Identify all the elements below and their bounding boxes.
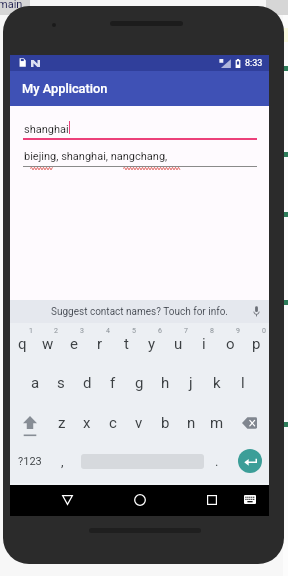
button[interactable]: Enter: [230, 441, 269, 481]
button[interactable]: d: [74, 363, 100, 403]
staticText: y: [148, 335, 156, 353]
staticText: 1: [29, 327, 33, 335]
button[interactable]: Backspace: [230, 403, 269, 443]
staticText: m: [210, 414, 224, 432]
staticText: main: [0, 0, 23, 11]
button[interactable]: j: [178, 363, 204, 403]
button[interactable]: 0: [243, 323, 269, 363]
staticText: k: [213, 374, 221, 392]
staticText: 5: [132, 327, 136, 335]
button[interactable]: ,: [49, 441, 75, 481]
staticText: ?123: [18, 455, 42, 468]
staticText: Suggest contact names? Touch for info.: [10, 306, 269, 318]
button[interactable]: shanghai: [24, 123, 69, 136]
staticText: 8: [210, 327, 214, 335]
button[interactable]: s: [48, 363, 74, 403]
staticText: b: [161, 414, 170, 432]
staticText: f: [110, 374, 116, 392]
button[interactable]: 8: [191, 323, 217, 363]
button[interactable]: 5: [113, 323, 139, 363]
staticText: z: [58, 414, 66, 432]
staticText: p: [252, 335, 261, 353]
button[interactable]: 7: [165, 323, 191, 363]
button[interactable]: k: [204, 363, 230, 403]
button[interactable]: Back: [47, 485, 87, 514]
staticText: a: [31, 374, 40, 392]
button[interactable]: m: [204, 403, 230, 443]
button[interactable]: Recents: [192, 485, 232, 514]
button[interactable]: f: [100, 363, 126, 403]
staticText: 4: [106, 327, 110, 335]
staticText: e: [70, 335, 78, 353]
button[interactable]: Space: [75, 441, 204, 481]
staticText: 6: [158, 327, 162, 335]
button[interactable]: n: [178, 403, 204, 443]
button[interactable]: Home: [120, 485, 160, 514]
button[interactable]: 9: [217, 323, 243, 363]
button[interactable]: Voice input: [243, 300, 269, 323]
button[interactable]: 6: [139, 323, 165, 363]
button[interactable]: b: [152, 403, 178, 443]
staticText: ,: [61, 454, 64, 469]
staticText: d: [83, 374, 92, 392]
button[interactable]: 1: [10, 323, 35, 363]
staticText: x: [83, 414, 91, 432]
staticText: h: [161, 374, 170, 392]
button[interactable]: ?123: [10, 441, 49, 481]
button[interactable]: x: [74, 403, 100, 443]
staticText: o: [226, 335, 235, 353]
button[interactable]: a: [23, 363, 48, 403]
staticText: My Application: [22, 81, 108, 96]
staticText: .: [215, 454, 219, 469]
staticText: s: [57, 374, 65, 392]
button[interactable]: 3: [61, 323, 87, 363]
staticText: g: [135, 374, 144, 392]
button[interactable]: .: [204, 441, 230, 481]
staticText: i: [202, 335, 206, 353]
staticText: 9: [236, 327, 240, 335]
staticText: q: [18, 335, 27, 353]
button[interactable]: l: [230, 363, 256, 403]
staticText: 8:33: [245, 58, 263, 69]
staticText: n: [187, 414, 196, 432]
button[interactable]: Shift: [10, 403, 49, 443]
button[interactable]: h: [152, 363, 178, 403]
staticText: 0: [262, 327, 266, 335]
staticText: l: [241, 374, 245, 392]
button[interactable]: c: [100, 403, 126, 443]
staticText: v: [135, 414, 143, 432]
staticText: 2: [54, 327, 58, 335]
staticText: 7: [184, 327, 188, 335]
staticText: t: [124, 335, 129, 353]
staticText: 3: [80, 327, 84, 335]
button[interactable]: Hide keyboard: [234, 485, 265, 514]
staticText: w: [42, 335, 54, 353]
button[interactable]: g: [126, 363, 152, 403]
button[interactable]: v: [126, 403, 152, 443]
button[interactable]: Suggest contact names? Touch for info.: [10, 300, 269, 323]
staticText: u: [174, 335, 183, 353]
staticText: j: [189, 374, 193, 392]
button[interactable]: 4: [87, 323, 113, 363]
button[interactable]: biejing, shanghai, nangchang,: [24, 150, 168, 163]
button[interactable]: 2: [35, 323, 61, 363]
staticText: r: [97, 335, 103, 353]
button[interactable]: z: [49, 403, 74, 443]
staticText: c: [109, 414, 117, 432]
